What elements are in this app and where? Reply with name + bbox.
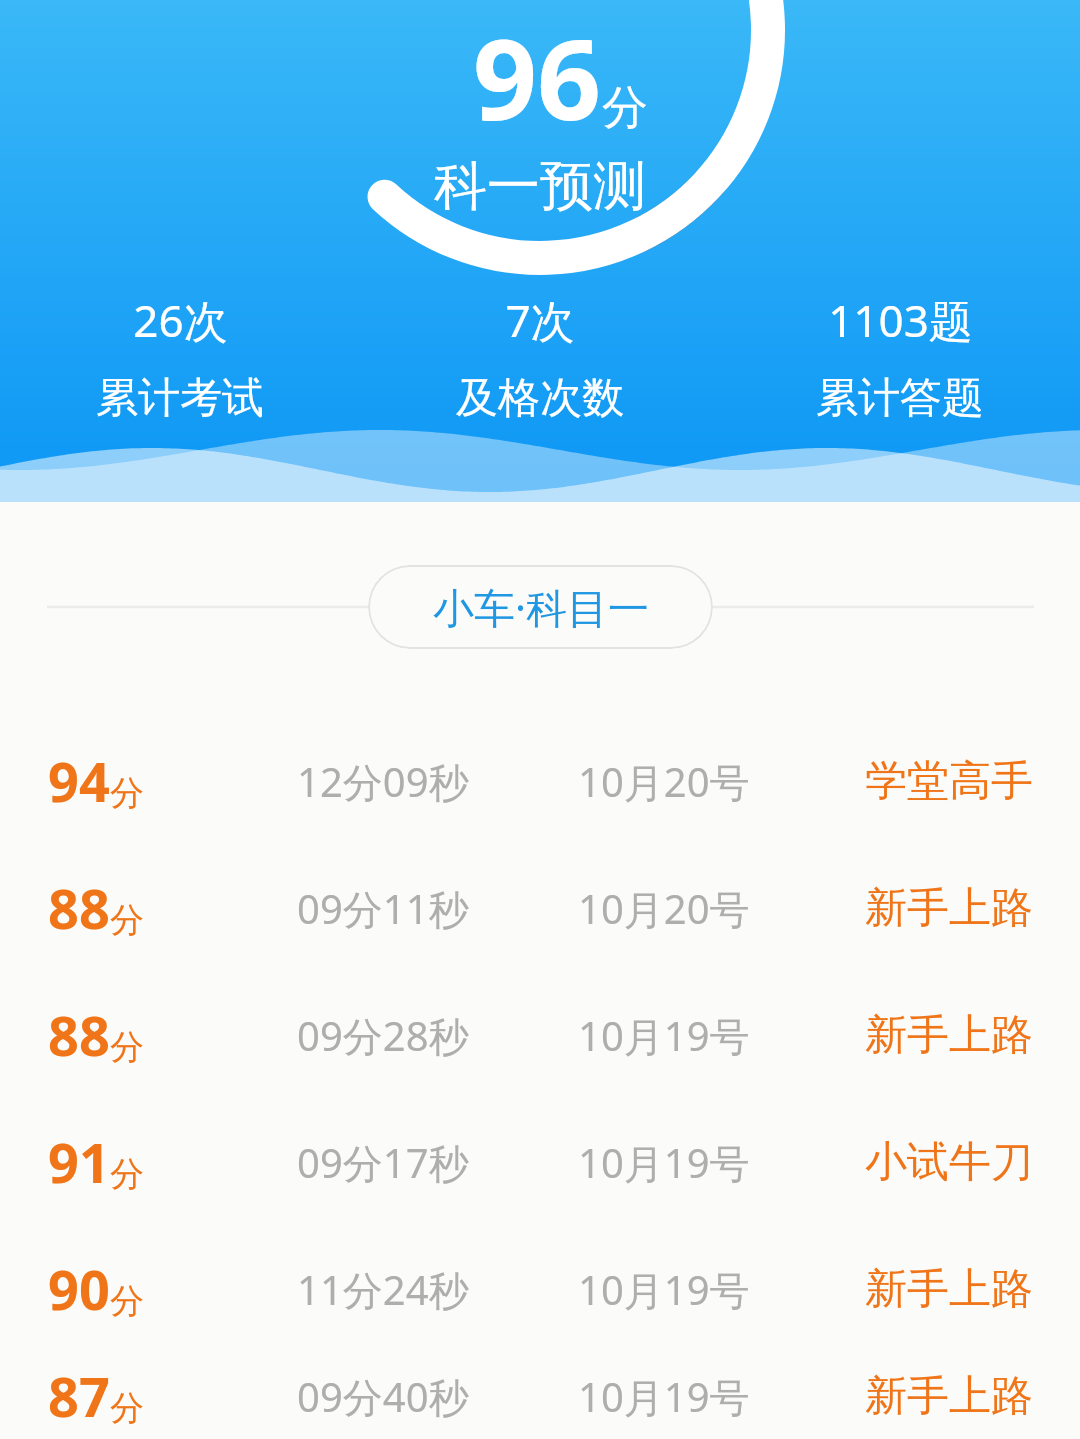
staticText: 分 [110,1153,144,1196]
staticText: 88 [48,998,110,1072]
staticText: 新手上路 [865,882,1033,935]
staticText: 12分09秒 [297,754,578,809]
staticText: 科一预测 [434,153,646,220]
staticText: 11分24秒 [297,1262,578,1317]
staticText: 09分17秒 [297,1135,578,1190]
staticText: 分 [110,1387,144,1430]
staticText: 小试牛刀 [865,1136,1033,1189]
staticText: 87 [48,1359,110,1433]
staticText: 10月20号 [578,881,865,936]
staticText: 学堂高手 [865,755,1033,808]
staticText: 分 [110,1026,144,1069]
staticText: 分 [110,772,144,815]
staticText: 96 [473,0,602,153]
staticText: 10月19号 [578,1135,865,1190]
staticText: 分 [110,1280,144,1323]
button[interactable]: 88 [0,971,1080,1098]
staticText: 09分28秒 [297,1008,578,1063]
staticText: 09分11秒 [297,881,578,936]
staticText: 分 [110,899,144,942]
staticText: 小车·科目一 [433,579,649,635]
staticText: 1103题 [828,290,973,350]
button[interactable]: 91 [0,1098,1080,1225]
staticText: 94 [48,744,110,818]
staticText: 累计答题 [816,372,984,425]
button[interactable]: 1103题 [720,290,1080,425]
staticText: 26次 [133,290,228,350]
staticText: 10月19号 [578,1369,865,1424]
staticText: 分 [602,79,648,137]
staticText: 新手上路 [865,1009,1033,1062]
staticText: 新手上路 [865,1370,1033,1423]
staticText: 10月20号 [578,754,865,809]
staticText: 10月19号 [578,1262,865,1317]
staticText: 90 [48,1252,110,1326]
button[interactable]: 94 [0,717,1080,844]
staticText: 91 [48,1125,110,1199]
button[interactable]: 26次 [0,290,360,425]
staticText: 及格次数 [456,372,624,425]
staticText: 累计考试 [96,372,264,425]
button[interactable]: 90 [0,1225,1080,1352]
button[interactable]: 87 [0,1352,1080,1439]
button[interactable]: 小车·科目一 [368,565,713,649]
button[interactable]: 7次 [360,290,720,425]
button[interactable]: 88 [0,844,1080,971]
staticText: 88 [48,871,110,945]
staticText: 7次 [505,290,575,350]
staticText: 09分40秒 [297,1369,578,1424]
staticText: 10月19号 [578,1008,865,1063]
staticText: 新手上路 [865,1263,1033,1316]
